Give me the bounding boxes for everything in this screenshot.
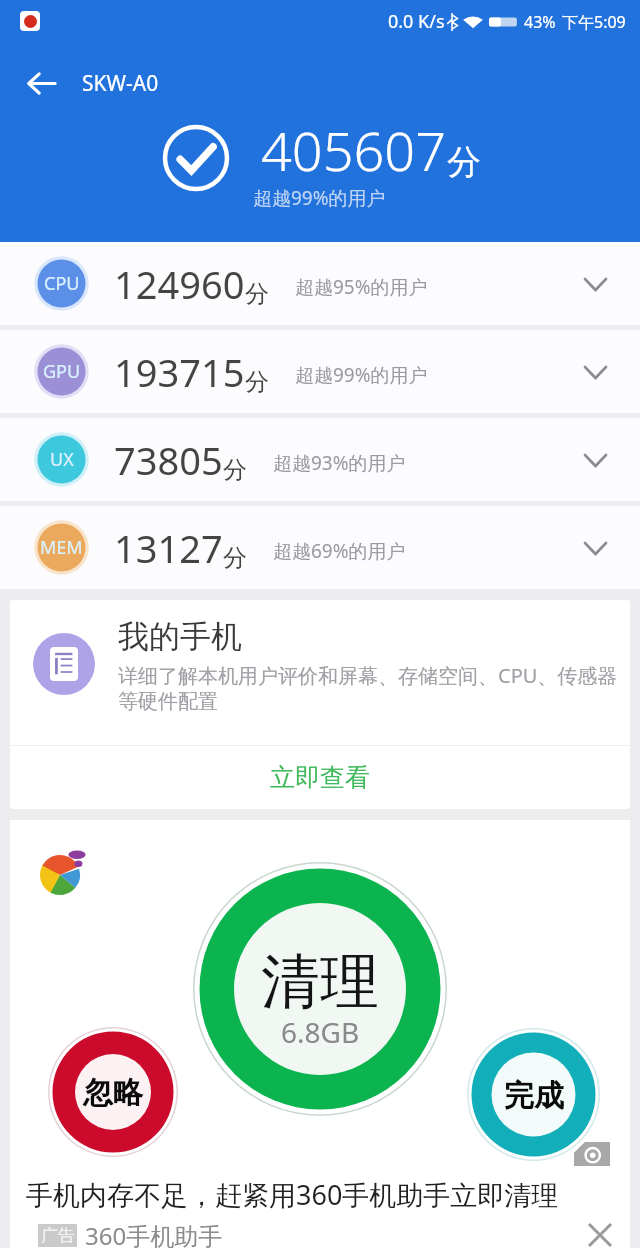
button[interactable]: CPU: [0, 242, 640, 325]
staticText: 0.0 K/s: [388, 9, 445, 34]
staticText: 清理: [261, 945, 379, 1019]
button[interactable]: Expand: [569, 522, 621, 574]
staticText: 等硬件配置: [118, 689, 218, 714]
staticText: GPU: [43, 359, 81, 384]
staticText: UX: [50, 447, 74, 472]
staticText: 我的手机: [118, 617, 242, 656]
staticText: 忽略: [83, 1074, 143, 1112]
staticText: 分: [447, 141, 481, 184]
staticText: 广告: [41, 1225, 75, 1246]
button[interactable]: MEM: [0, 506, 640, 589]
staticText: 超越93%的用户: [273, 450, 406, 476]
staticText: 分: [223, 543, 247, 573]
button[interactable]: Expand: [569, 434, 621, 486]
staticText: SKW-A0: [82, 69, 159, 98]
button[interactable]: GPU: [0, 330, 640, 413]
staticText: CPU: [44, 271, 80, 296]
staticText: 193715: [114, 346, 245, 398]
button[interactable]: 清理: [10, 820, 630, 1248]
staticText: 超越95%的用户: [295, 274, 428, 300]
staticText: 超越99%的用户: [253, 185, 386, 211]
staticText: 分: [245, 279, 269, 309]
staticText: 分: [245, 367, 269, 397]
button[interactable]: Close ad: [580, 1215, 620, 1248]
staticText: 360手机助手: [85, 1219, 223, 1248]
button[interactable]: Expand: [569, 258, 621, 310]
button[interactable]: Back: [0, 42, 82, 124]
staticText: 124960: [114, 258, 245, 310]
staticText: 超越99%的用户: [295, 362, 428, 388]
button[interactable]: Expand: [569, 346, 621, 398]
staticText: 详细了解本机用户评价和屏幕、存储空间、CPU、传感器: [118, 662, 618, 689]
staticText: 分: [223, 455, 247, 485]
staticText: 完成: [504, 1077, 564, 1115]
button[interactable]: UX: [0, 418, 640, 501]
staticText: 73805: [114, 434, 223, 486]
button[interactable]: 立即查看: [10, 746, 630, 809]
staticText: 超越69%的用户: [273, 538, 406, 564]
staticText: MEM: [40, 535, 83, 560]
staticText: 405607: [261, 113, 447, 187]
staticText: 立即查看: [270, 762, 370, 793]
staticText: 43%: [524, 11, 556, 33]
staticText: 手机内存不足，赶紧用360手机助手立即清理: [26, 1176, 559, 1213]
staticText: 下午5:09: [562, 11, 626, 33]
staticText: 6.8GB: [281, 1013, 360, 1051]
staticText: 13127: [114, 522, 223, 574]
